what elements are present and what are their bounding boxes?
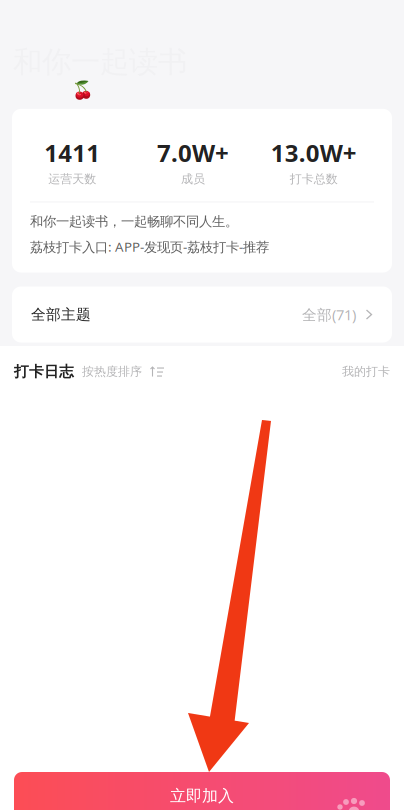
button[interactable]: 立即加入 [14,772,390,810]
staticText: 成员 [181,172,205,186]
staticText: 打卡日志 [14,362,74,380]
staticText: 我的打卡 [342,364,390,379]
staticText: 全部(71) [302,305,356,324]
button[interactable]: 按热度排序 [74,364,165,379]
staticText: 按热度排序 [82,364,142,379]
staticText: 荔枝打卡入口: APP-发现页-荔枝打卡-推荐 [30,238,269,255]
button[interactable]: 全部主题 [12,286,392,342]
staticText: 1411 [44,137,100,169]
staticText: 🍒 [72,80,94,100]
button[interactable]: 我的打卡 [342,364,390,379]
staticText: 打卡总数 [290,172,338,186]
staticText: 运营天数 [48,172,96,186]
staticText: 全部主题 [31,305,91,323]
staticText: 7.0W+ [157,137,229,169]
staticText: 和你一起读书，一起畅聊不同人生。 [30,213,238,230]
staticText: 立即加入 [170,786,234,806]
staticText: 13.0W+ [271,137,357,169]
